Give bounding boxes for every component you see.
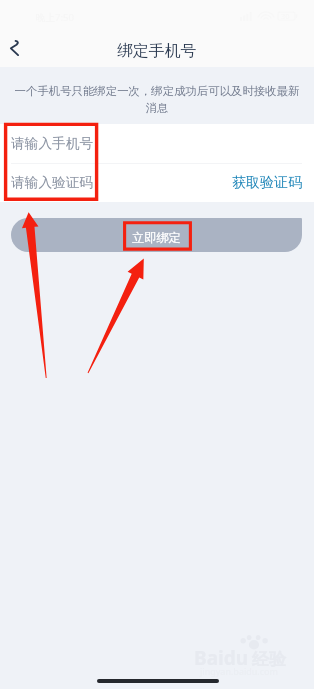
- staticText: 立即绑定: [132, 230, 181, 245]
- staticText: 请输入手机号: [11, 135, 94, 152]
- button[interactable]: 获取验证码: [220, 163, 314, 202]
- staticText: Baidu: [194, 645, 249, 671]
- staticText: 请输入验证码: [11, 174, 94, 191]
- button[interactable]: 立即绑定: [11, 218, 302, 252]
- button[interactable]: Back: [2, 30, 26, 66]
- staticText: 绑定手机号: [117, 41, 197, 61]
- staticText: 一个手机号只能绑定一次，绑定成功后可以及时接收最新消息: [12, 84, 302, 115]
- button[interactable]: 请输入手机号: [0, 124, 314, 163]
- button[interactable]: 请输入验证码: [0, 163, 220, 202]
- staticText: 经验: [252, 649, 286, 670]
- staticText: 获取验证码: [232, 174, 302, 192]
